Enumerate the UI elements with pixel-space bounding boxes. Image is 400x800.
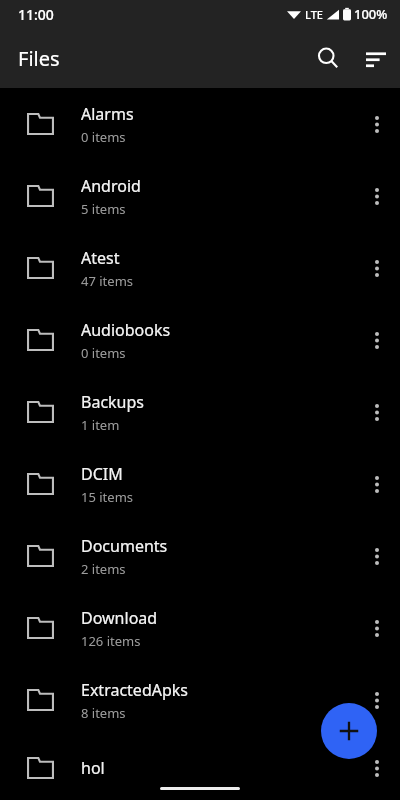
staticText: 1 item bbox=[81, 416, 120, 434]
staticText: hol bbox=[81, 757, 105, 779]
button[interactable]: Documents bbox=[0, 520, 400, 592]
button[interactable]: More options for Android bbox=[354, 160, 400, 232]
staticText: Android bbox=[81, 175, 141, 197]
button[interactable]: Audiobooks bbox=[0, 304, 400, 376]
staticText: 11:00 bbox=[18, 5, 54, 24]
button[interactable]: ExtractedApks bbox=[0, 664, 400, 736]
staticText: Documents bbox=[81, 535, 168, 557]
staticText: LTE bbox=[305, 7, 323, 22]
staticText: Backups bbox=[81, 391, 144, 413]
staticText: 100% bbox=[354, 5, 388, 23]
staticText: Download bbox=[81, 607, 158, 629]
button[interactable]: More options for ExtractedApks bbox=[354, 664, 400, 736]
staticText: 0 items bbox=[81, 128, 126, 146]
staticText: Files bbox=[18, 45, 60, 72]
button[interactable]: Sort bbox=[352, 34, 400, 82]
button[interactable]: More options for DCIM bbox=[354, 448, 400, 520]
button[interactable]: Backups bbox=[0, 376, 400, 448]
button[interactable]: Search bbox=[304, 34, 352, 82]
staticText: 15 items bbox=[81, 488, 134, 506]
button[interactable]: Atest bbox=[0, 232, 400, 304]
staticText: Alarms bbox=[81, 103, 134, 125]
staticText: Atest bbox=[81, 247, 120, 269]
button[interactable]: More options for hol bbox=[354, 736, 400, 800]
button[interactable]: Alarms bbox=[0, 88, 400, 160]
button[interactable]: More options for Alarms bbox=[354, 88, 400, 160]
staticText: ExtractedApks bbox=[81, 679, 188, 701]
staticText: 0 items bbox=[81, 344, 126, 362]
button[interactable]: More options for Download bbox=[354, 592, 400, 664]
button[interactable]: Android bbox=[0, 160, 400, 232]
button[interactable]: DCIM bbox=[0, 448, 400, 520]
button[interactable]: More options for Audiobooks bbox=[354, 304, 400, 376]
staticText: 2 items bbox=[81, 560, 126, 578]
button[interactable]: More options for Documents bbox=[354, 520, 400, 592]
staticText: Audiobooks bbox=[81, 319, 171, 341]
staticText: 8 items bbox=[81, 704, 126, 722]
staticText: 5 items bbox=[81, 200, 126, 218]
staticText: DCIM bbox=[81, 463, 123, 485]
staticText: 47 items bbox=[81, 272, 134, 290]
button[interactable]: hol bbox=[0, 736, 400, 800]
button[interactable]: More options for Backups bbox=[354, 376, 400, 448]
button[interactable]: Create new bbox=[321, 703, 377, 759]
button[interactable]: More options for Atest bbox=[354, 232, 400, 304]
button[interactable]: Download bbox=[0, 592, 400, 664]
staticText: 126 items bbox=[81, 632, 141, 650]
